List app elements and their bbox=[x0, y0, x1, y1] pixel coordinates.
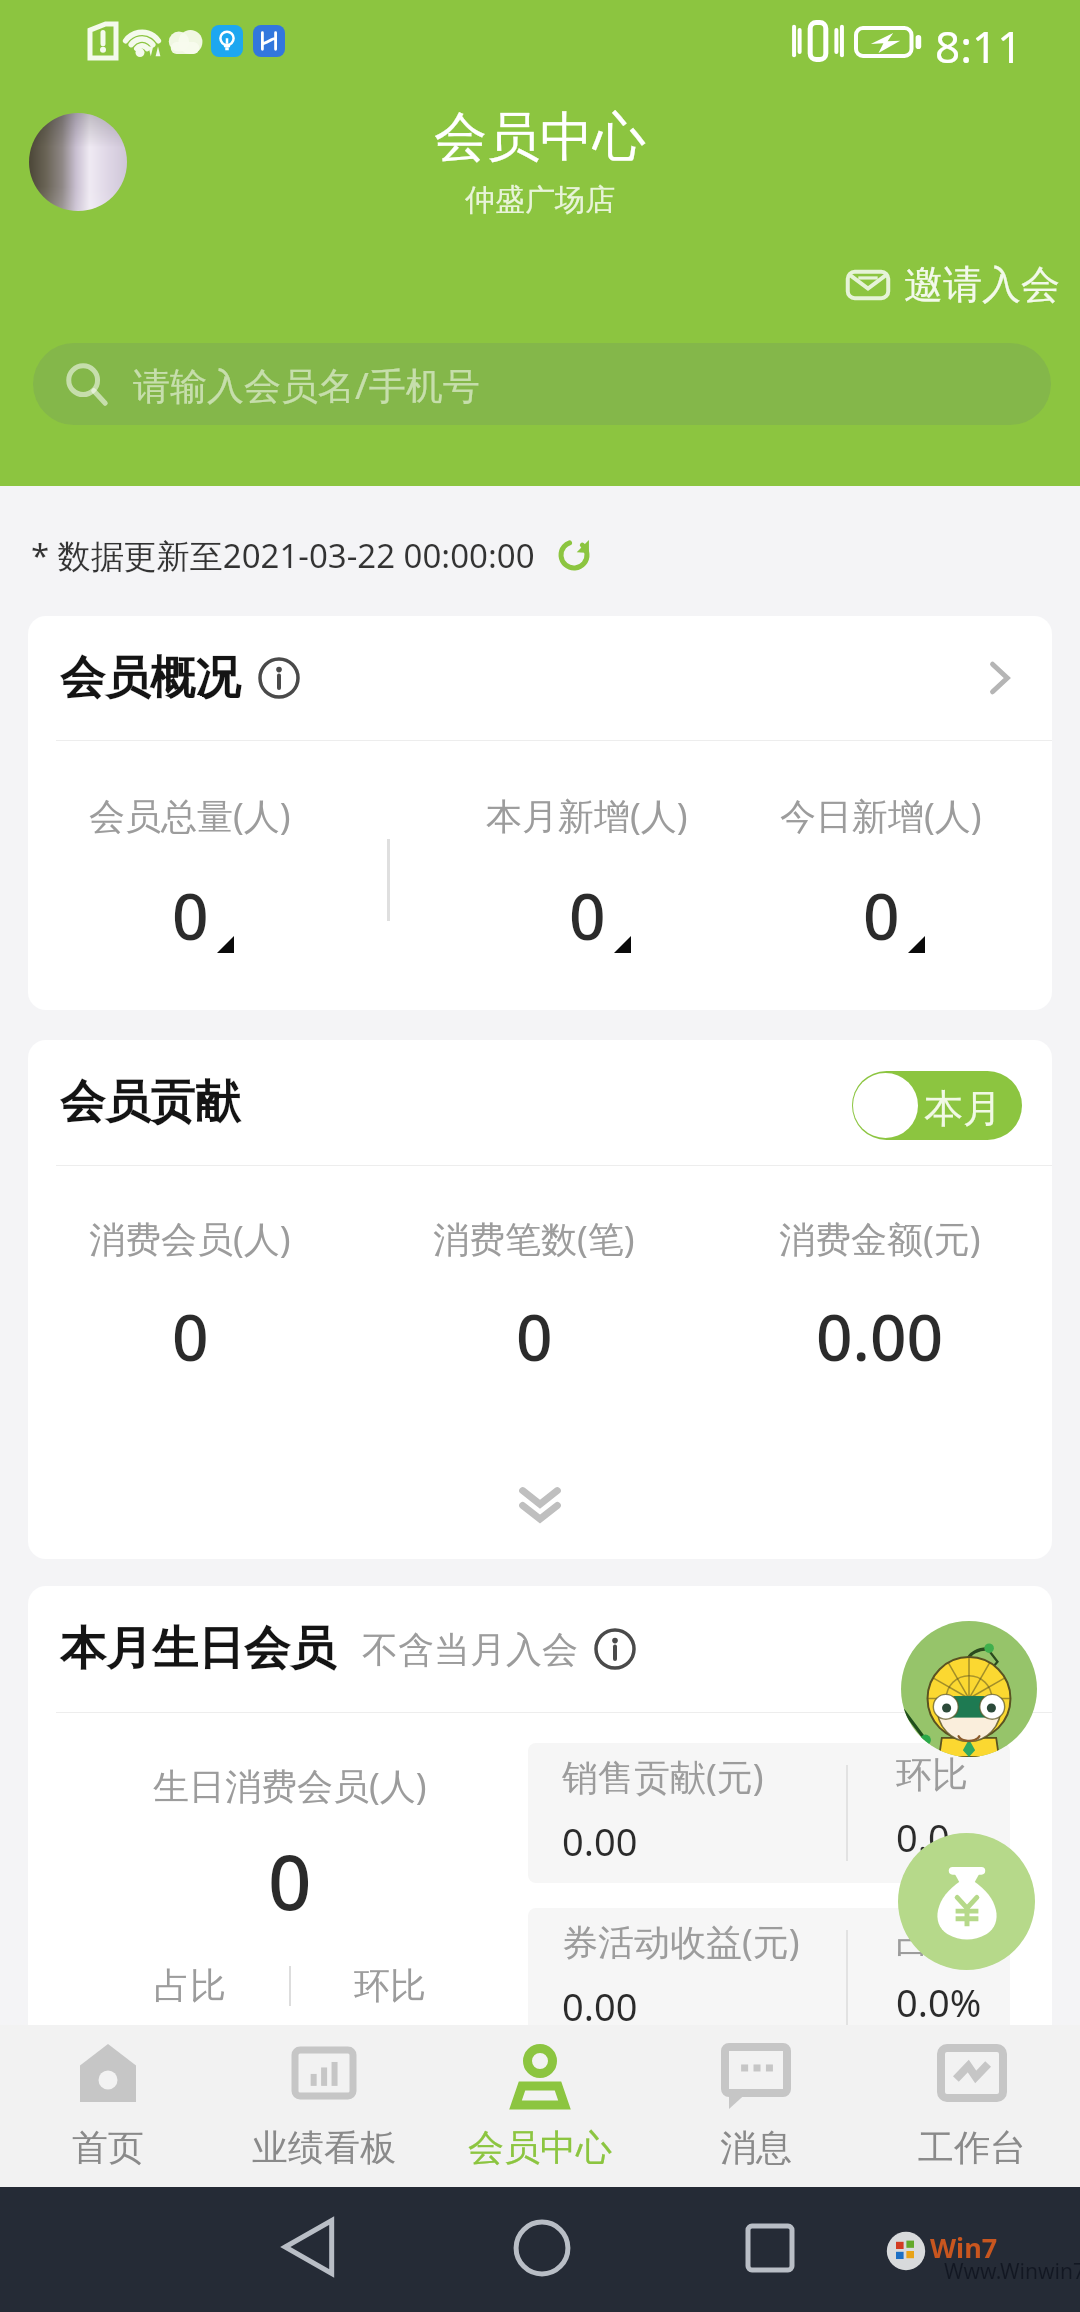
button[interactable]: 首页 bbox=[0, 2025, 216, 2187]
staticText: 8:11 bbox=[935, 16, 1023, 76]
button[interactable]: Back bbox=[282, 2217, 336, 2277]
staticText: * 数据更新至2021-03-22 00:00:00 bbox=[31, 533, 535, 578]
staticText: 会员中心 bbox=[468, 2125, 612, 2170]
button[interactable]: 邀请入会 bbox=[846, 260, 1060, 309]
staticText: 0.0% bbox=[896, 1976, 982, 2025]
button[interactable]: Expand bbox=[28, 1446, 1052, 1559]
staticText: 0.00 bbox=[562, 1980, 638, 2025]
staticText: 消费笔数(笔) bbox=[433, 1214, 635, 1263]
staticText: 本月生日会员 bbox=[60, 1620, 336, 1678]
button[interactable]: 工作台 bbox=[864, 2025, 1080, 2187]
staticText: 邀请入会 bbox=[904, 260, 1060, 309]
staticText: 0 bbox=[863, 872, 900, 959]
staticText: 消息 bbox=[720, 2125, 792, 2170]
button[interactable]: 业绩看板 bbox=[216, 2025, 432, 2187]
staticText: 今日新增(人) bbox=[780, 791, 982, 840]
staticText: 工作台 bbox=[918, 2125, 1026, 2170]
staticText: Win7 bbox=[930, 2229, 998, 2266]
staticText: Www.Winwin7.com bbox=[944, 2257, 1080, 2286]
staticText: 本月 bbox=[924, 1084, 1002, 1133]
button[interactable]: 本月 bbox=[852, 1071, 1022, 1140]
button[interactable]: Recents bbox=[746, 2224, 794, 2272]
staticText: 0.00 bbox=[816, 1293, 944, 1380]
staticText: 0 bbox=[172, 872, 209, 959]
staticText: 请输入会员名/手机号 bbox=[133, 359, 480, 410]
staticText: 会员概况 bbox=[60, 650, 240, 707]
staticText: 本月新增(人) bbox=[486, 791, 688, 840]
staticText: 消费会员(人) bbox=[89, 1214, 291, 1263]
staticText: 0 bbox=[516, 1293, 553, 1380]
staticText: 会员中心 bbox=[434, 104, 646, 171]
staticText: 占比 bbox=[154, 1963, 226, 2008]
staticText: 消费金额(元) bbox=[779, 1214, 981, 1263]
button[interactable]: Refresh bbox=[557, 538, 591, 572]
button[interactable]: Coupon income bbox=[898, 1833, 1035, 1970]
button[interactable]: 请输入会员名/手机号 bbox=[33, 343, 1051, 425]
staticText: 0 bbox=[172, 1293, 209, 1380]
button[interactable]: 会员中心 bbox=[432, 2025, 648, 2187]
staticText: 0.00 bbox=[562, 1815, 638, 1867]
staticText: 会员总量(人) bbox=[89, 791, 291, 840]
staticText: 销售贡献(元) bbox=[562, 1752, 764, 1801]
staticText: 占比 bbox=[896, 1917, 968, 1962]
staticText: 仲盛广场店 bbox=[465, 181, 615, 219]
staticText: 0 bbox=[268, 1829, 312, 1933]
staticText: 会员贡献 bbox=[60, 1074, 240, 1131]
button[interactable]: Profile bbox=[29, 113, 127, 211]
staticText: 券活动收益(元) bbox=[562, 1917, 800, 1966]
staticText: 不含当月入会 bbox=[362, 1627, 578, 1672]
staticText: 首页 bbox=[72, 2125, 144, 2170]
button[interactable]: 会员概况 bbox=[28, 616, 1052, 740]
button[interactable]: 消息 bbox=[648, 2025, 864, 2187]
staticText: 业绩看板 bbox=[252, 2125, 396, 2170]
staticText: 环比 bbox=[896, 1752, 968, 1797]
staticText: 环比 bbox=[354, 1963, 426, 2008]
staticText: 生日消费会员(人) bbox=[153, 1761, 427, 1810]
button[interactable]: Home bbox=[515, 2221, 569, 2275]
staticText: 0 bbox=[569, 872, 606, 959]
staticText: 0.0 bbox=[896, 1811, 950, 1863]
